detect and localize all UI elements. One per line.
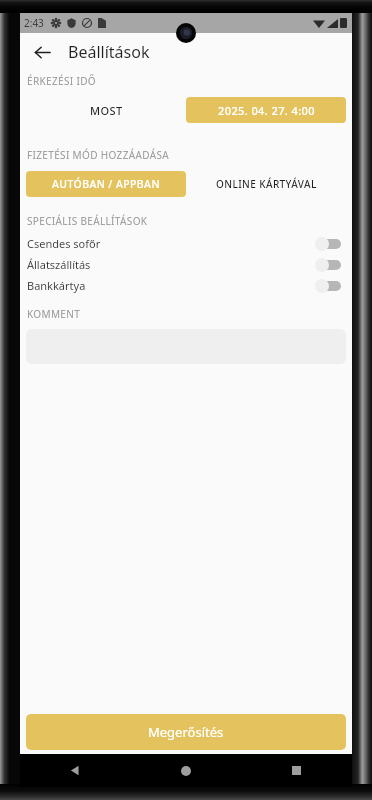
staticText: MOST [90, 103, 123, 118]
button[interactable]: Recent apps [241, 754, 352, 787]
staticText: FIZETÉSI MÓD HOZZÁADÁSA [27, 148, 169, 162]
staticText: 2:43 [24, 16, 44, 30]
staticText: Beállítások [68, 41, 150, 63]
button[interactable]: Bankkártya [20, 275, 352, 296]
button[interactable]: Csendes sofőr [20, 233, 352, 254]
button[interactable]: 2025. 04. 27. 4:00 [186, 97, 346, 123]
staticText: 2025. 04. 27. 4:00 [218, 103, 315, 118]
button[interactable]: Back [20, 754, 130, 787]
staticText: Csendes sofőr [27, 236, 101, 251]
button[interactable]: Megerősítés [26, 714, 346, 750]
staticText: AUTÓBAN / APPBAN [52, 177, 160, 191]
button[interactable]: Back [26, 36, 58, 68]
button[interactable]: MOST [26, 97, 186, 123]
staticText: ÉRKEZÉSI IDŐ [27, 74, 96, 88]
staticText: SPECIÁLIS BEÁLLÍTÁSOK [27, 214, 148, 228]
button[interactable]: ONLINE KÁRTYÁVAL [186, 171, 346, 197]
button[interactable]: Állatszállítás [20, 254, 352, 275]
staticText: Bankkártya [27, 278, 86, 293]
staticText: ONLINE KÁRTYÁVAL [216, 177, 317, 191]
staticText: Állatszállítás [27, 257, 91, 272]
staticText: KOMMENT [27, 307, 81, 321]
staticText: Megerősítés [148, 723, 224, 741]
button[interactable]: Home [130, 754, 241, 787]
button[interactable]: AUTÓBAN / APPBAN [26, 171, 186, 197]
